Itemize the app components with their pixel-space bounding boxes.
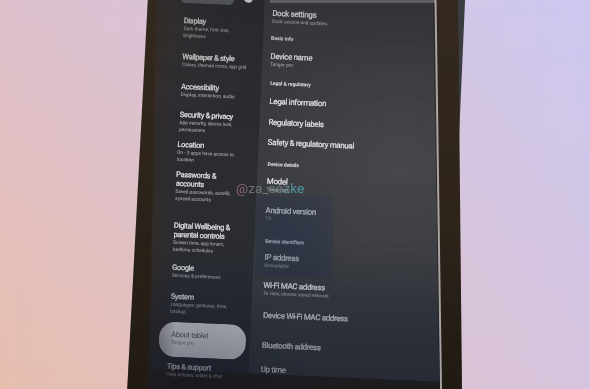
staticText: Regulatory labels	[268, 118, 325, 129]
button[interactable]: Android version	[265, 206, 431, 228]
staticText: Device identifiers	[265, 238, 304, 245]
button[interactable]: Device Wi-Fi MAC address	[263, 311, 428, 327]
staticText: Device name	[270, 52, 313, 63]
button[interactable]: IP address	[264, 253, 430, 275]
button[interactable]: Google	[172, 263, 248, 281]
button[interactable]: Passwords & accounts	[175, 170, 252, 203]
staticText: Device details	[268, 161, 300, 168]
staticText: Security & privacy	[180, 110, 234, 121]
staticText: @za_sozke	[236, 180, 305, 196]
button[interactable]: Up time	[260, 365, 426, 381]
button[interactable]: Account avatar	[244, 0, 253, 3]
staticText: IP address	[264, 253, 300, 263]
staticText: App security, device lock, permissions	[179, 120, 233, 134]
staticText: Safety & regulatory manual	[267, 138, 355, 151]
staticText: On - 3 apps have access to location	[177, 150, 235, 164]
staticText: Model	[267, 177, 288, 187]
staticText: Help articles, tablet & chat	[166, 372, 222, 380]
staticText: Legal information	[269, 97, 326, 108]
button[interactable]: Model	[266, 177, 432, 199]
staticText: To view, choose saved network	[263, 291, 329, 300]
staticText: Legal & regulatory	[270, 80, 311, 88]
button[interactable]: Wi-Fi MAC address	[263, 281, 428, 303]
staticText: Languages, gestures, time, backup	[170, 302, 228, 316]
staticText: Tips & support	[167, 362, 212, 373]
button[interactable]: Location	[177, 140, 253, 164]
staticText: Services & preferences	[172, 273, 221, 281]
staticText: About tablet	[171, 330, 208, 340]
button[interactable]: Accessibility	[180, 82, 257, 100]
staticText: Basic info	[271, 35, 294, 42]
staticText: Google	[172, 263, 194, 273]
button[interactable]: Device name	[270, 52, 435, 74]
staticText: Dark theme, font size, brightness	[183, 26, 230, 40]
staticText: Up time	[260, 365, 287, 375]
button[interactable]: About tablet	[158, 321, 247, 360]
staticText: Location	[177, 140, 205, 150]
button[interactable]: Wallpaper & style	[182, 52, 258, 70]
button[interactable]: Dock settings	[272, 9, 437, 31]
button[interactable]: Security & privacy	[179, 110, 256, 134]
staticText: Android version	[265, 206, 317, 217]
staticText: Dock version and updates.	[272, 19, 329, 27]
staticText: Digital Wellbeing & parental controls	[173, 221, 230, 241]
staticText: Screen time, app timers, bedtime schedul…	[173, 240, 225, 254]
staticText: Tangor pro	[266, 187, 291, 194]
staticText: 13	[265, 216, 271, 222]
staticText: Passwords & accounts	[176, 170, 217, 190]
button[interactable]: Bluetooth address	[262, 341, 427, 357]
button[interactable]: Tips & support	[166, 362, 249, 380]
button[interactable]: Legal information	[269, 97, 434, 113]
staticText: Bluetooth address	[262, 341, 321, 352]
button[interactable]: System	[170, 292, 247, 316]
staticText: Accessibility	[181, 82, 219, 93]
staticText: Display, interaction, audio	[180, 92, 236, 100]
staticText: Wallpaper & style	[182, 52, 234, 63]
button[interactable]: Safety & regulatory manual	[267, 138, 433, 154]
staticText: Dock settings	[272, 9, 317, 20]
staticText: Colors, themed icons, app grid	[182, 62, 247, 71]
staticText: System	[171, 292, 194, 302]
staticText: Display	[184, 16, 206, 26]
staticText: Tangor pro	[270, 62, 294, 69]
button[interactable]: Digital Wellbeing & parental controls	[173, 221, 250, 254]
button[interactable]: Search settings	[181, 0, 234, 5]
staticText: Tangor pro	[171, 340, 195, 347]
staticText: Unavailable	[264, 263, 289, 270]
staticText: Saved passwords, autofill, synced accoun…	[175, 189, 231, 203]
staticText: Device Wi-Fi MAC address	[263, 311, 348, 323]
button[interactable]: Regulatory labels	[268, 118, 433, 134]
staticText: Wi-Fi MAC address	[263, 281, 325, 292]
button[interactable]: Display	[183, 16, 260, 40]
